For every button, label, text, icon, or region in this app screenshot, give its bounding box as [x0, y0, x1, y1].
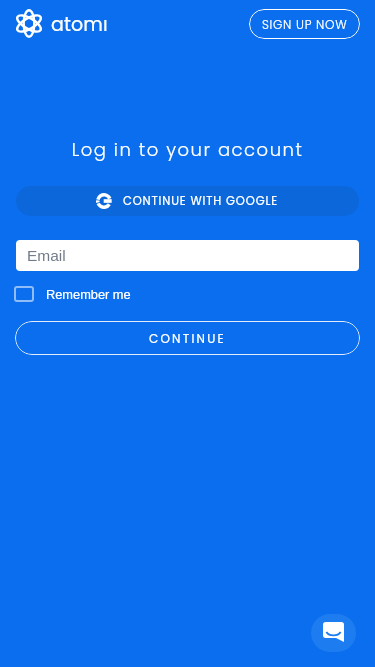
button[interactable]: SIGN UP NOW: [249, 9, 360, 39]
staticText: SIGN UP NOW: [262, 16, 348, 33]
staticText: Email: [27, 247, 66, 264]
staticText: Remember me: [46, 287, 131, 301]
button[interactable]: atomı: [14, 9, 108, 38]
button[interactable]: CONTINUE: [15, 321, 360, 355]
staticText: CONTINUE WITH GOOGLE: [123, 193, 279, 209]
staticText: atomı: [51, 11, 108, 38]
button[interactable]: Open chat: [311, 614, 356, 652]
staticText: CONTINUE: [149, 330, 226, 347]
button[interactable]: Email: [16, 240, 359, 271]
staticText: Log in to your account: [0, 137, 375, 162]
button[interactable]: Remember me: [14, 285, 131, 302]
button[interactable]: CONTINUE WITH GOOGLE: [16, 186, 359, 216]
